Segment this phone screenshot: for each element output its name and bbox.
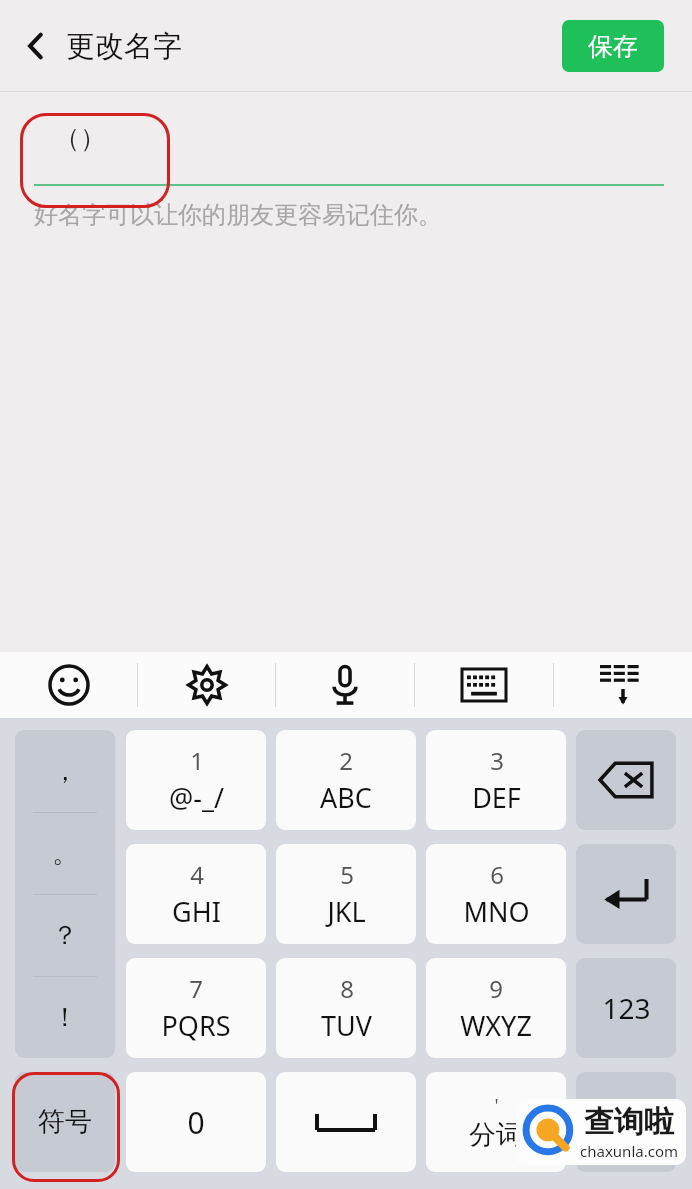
button[interactable]: Keyboard layout [415,652,553,718]
staticText: 1 [190,744,204,777]
staticText: @-_/ [169,779,224,816]
button[interactable]: Send [576,1072,676,1172]
button[interactable]: 5 [276,844,416,944]
button[interactable]: 9 [426,958,566,1058]
staticText: 符号 [38,1105,92,1139]
staticText: 2 [339,744,353,777]
staticText: GHI [172,893,221,930]
staticText: 好名字可以让你的朋友更容易记住你。 [34,200,442,230]
button[interactable]: 3 [426,730,566,830]
staticText: 更改名字 [66,28,182,65]
staticText: 查询啦 [584,1103,674,1141]
staticText: 6 [490,858,504,891]
staticText: 7 [189,972,203,1005]
button[interactable]: 7 [126,958,266,1058]
button[interactable]: Space [276,1072,416,1172]
button[interactable]: Backspace [576,730,676,830]
staticText: 0 [187,1102,205,1143]
button[interactable]: Emoji [0,652,137,718]
staticText: TUV [321,1007,372,1044]
staticText: chaxunla.com [580,1141,678,1161]
button[interactable]: Settings [138,652,275,718]
staticText: ？ [52,919,78,952]
staticText: WXYZ [460,1007,532,1044]
button[interactable]: Hide keyboard [554,652,692,718]
button[interactable]: 2 [276,730,416,830]
button[interactable]: 6 [426,844,566,944]
staticText: 8 [340,972,354,1005]
button[interactable]: 1 [126,730,266,830]
button[interactable]: 符号 [15,1072,115,1172]
button[interactable]: ' [426,1072,566,1172]
staticText: 3 [490,744,504,777]
staticText: MNO [463,893,530,930]
staticText: 。 [52,837,78,870]
staticText: ， [52,755,78,788]
button[interactable]: Back [8,18,64,74]
staticText: PQRS [161,1007,231,1044]
button[interactable]: Enter [576,844,676,944]
staticText: ' [494,1093,499,1118]
button[interactable]: 4 [126,844,266,944]
staticText: 4 [190,858,204,891]
staticText: 5 [340,858,354,891]
staticText: DEF [472,779,521,816]
button[interactable]: 8 [276,958,416,1058]
staticText: （） [54,122,106,155]
staticText: 保存 [588,31,638,62]
staticText: 分词 [469,1118,523,1152]
button[interactable]: 123 [576,958,676,1058]
staticText: JKL [327,893,366,930]
staticText: 123 [602,989,651,1027]
staticText: 9 [489,972,503,1005]
button[interactable]: 保存 [562,20,664,72]
staticText: ABC [320,779,372,816]
button[interactable]: Punctuation [15,730,115,1058]
button[interactable]: Voice input [276,652,414,718]
staticText: ！ [52,1001,78,1034]
button[interactable]: 0 [126,1072,266,1172]
